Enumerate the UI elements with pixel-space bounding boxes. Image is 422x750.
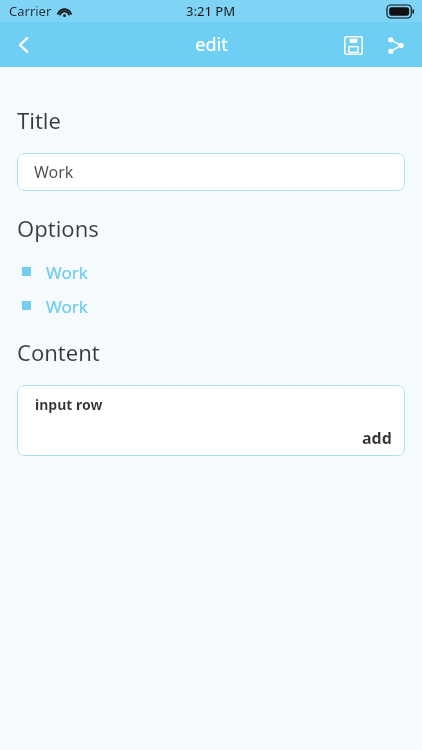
- button[interactable]: Work: [0, 261, 422, 282]
- staticText: Work: [46, 295, 88, 316]
- staticText: add: [362, 427, 392, 449]
- staticText: Content: [17, 337, 100, 367]
- staticText: Carrier: [9, 2, 52, 20]
- button[interactable]: Share: [374, 24, 416, 66]
- staticText: input row: [35, 395, 103, 414]
- button[interactable]: Back: [0, 22, 48, 67]
- staticText: edit: [195, 32, 228, 57]
- staticText: Title: [17, 105, 61, 135]
- button[interactable]: Save: [332, 24, 374, 66]
- staticText: Work: [46, 261, 88, 282]
- button[interactable]: Work: [0, 295, 422, 316]
- button[interactable]: Work: [17, 153, 405, 191]
- staticText: Work: [34, 161, 74, 183]
- staticText: Options: [17, 213, 99, 243]
- staticText: 3:21 PM: [186, 2, 236, 20]
- button[interactable]: add: [362, 427, 405, 456]
